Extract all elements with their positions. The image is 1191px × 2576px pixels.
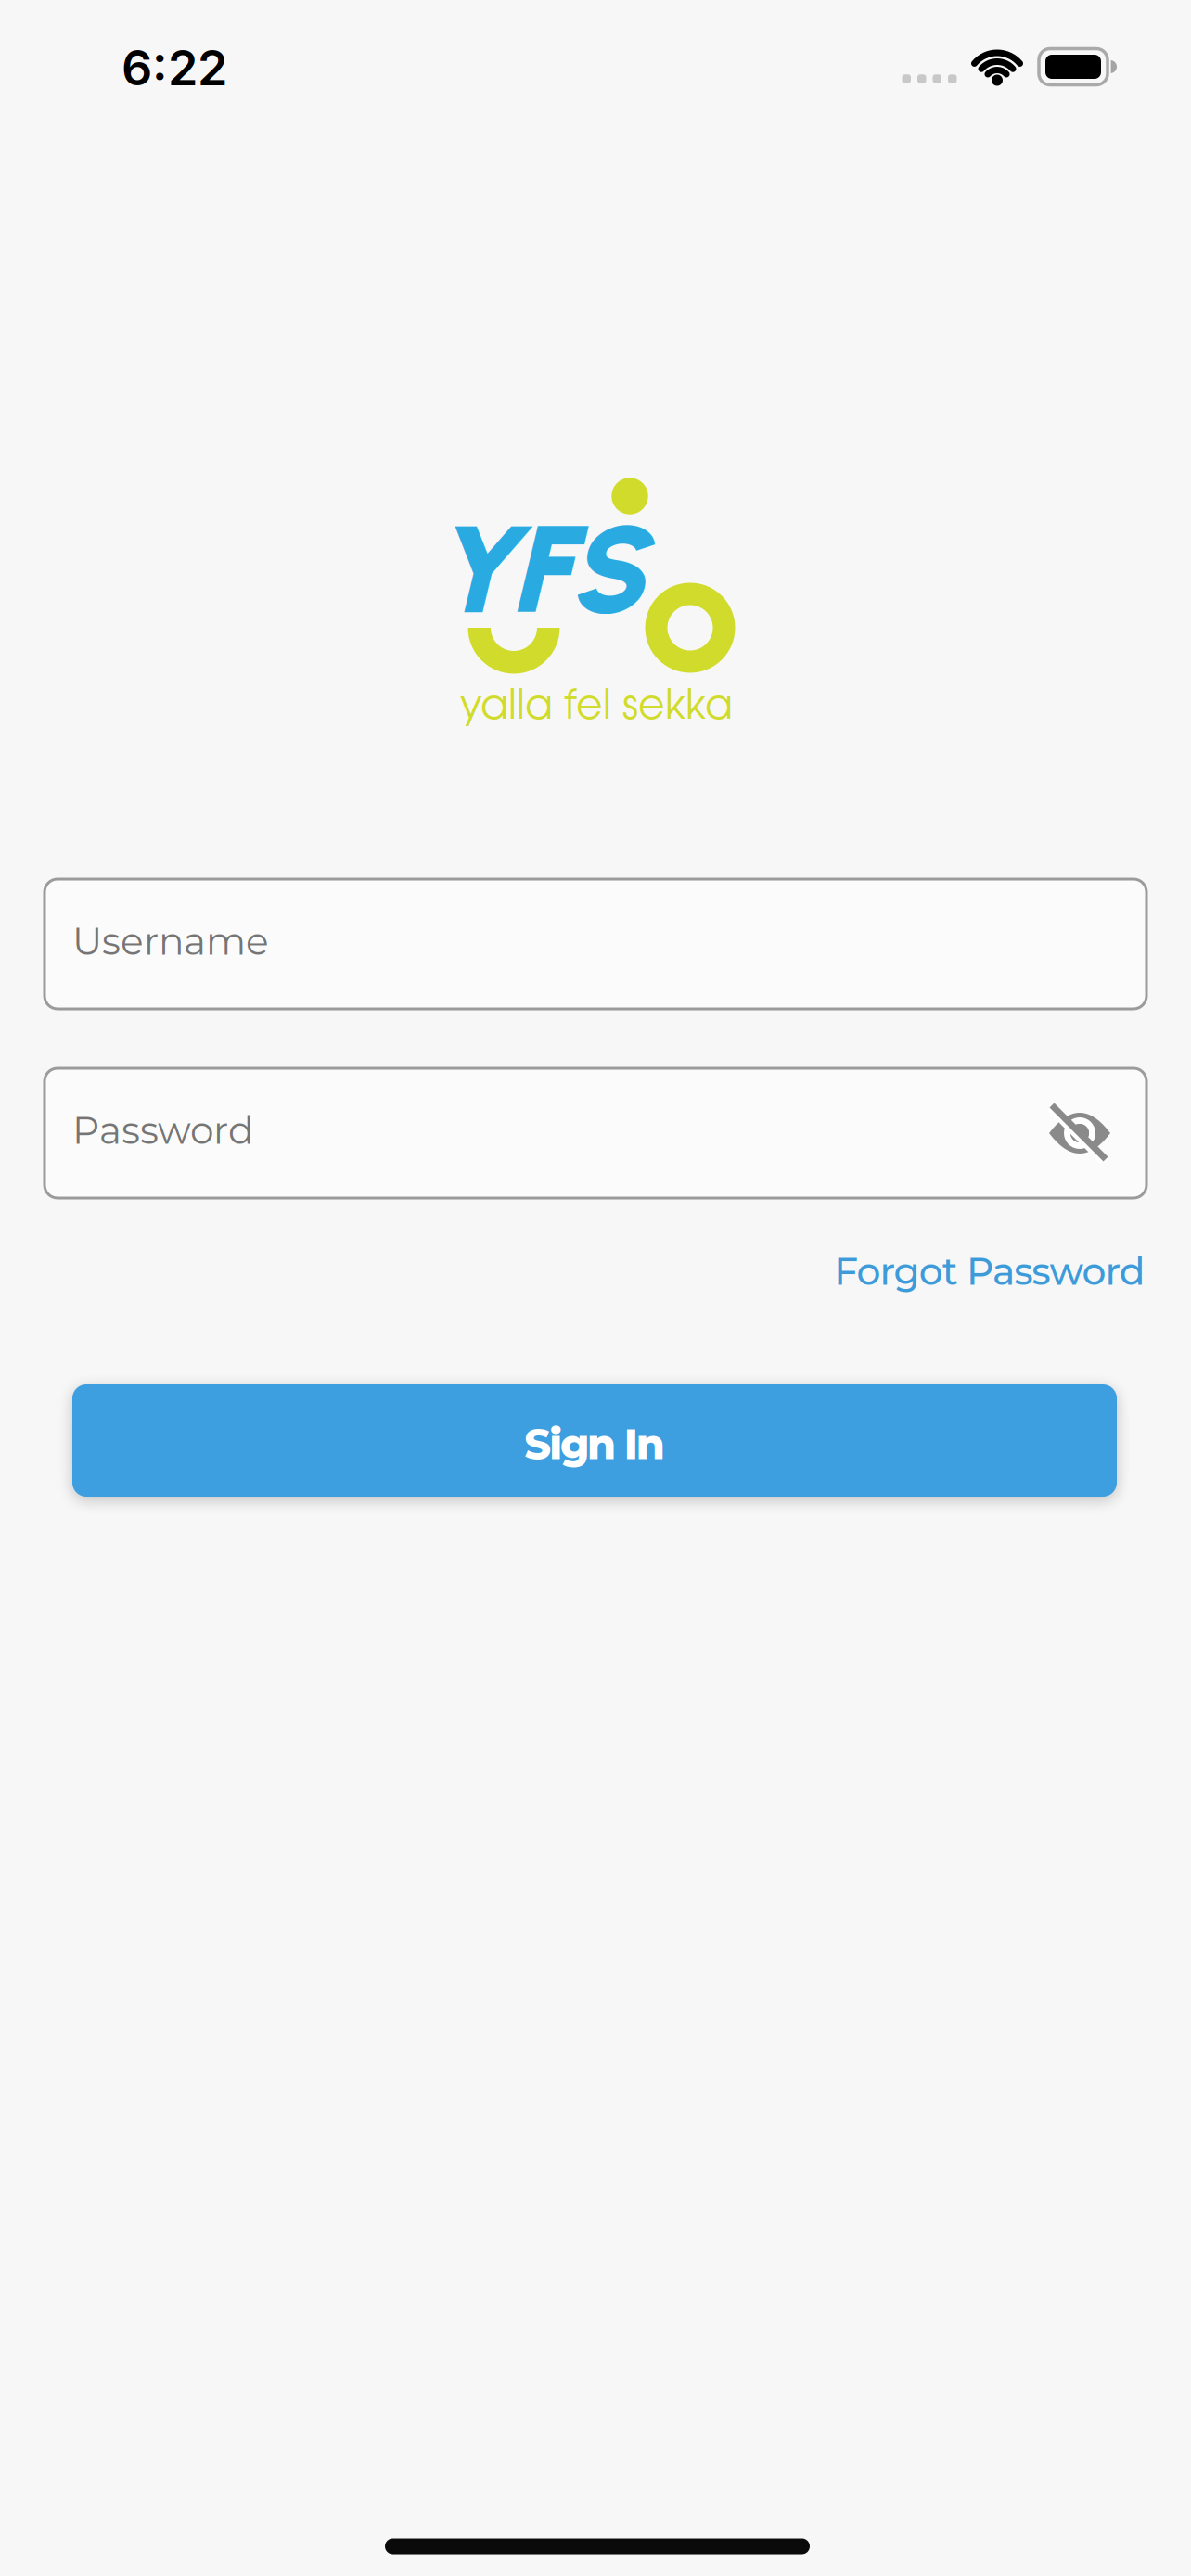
button[interactable]: Show password — [1038, 1091, 1121, 1175]
staticText: Password — [72, 1107, 254, 1153]
staticText: 6:22 — [122, 38, 227, 97]
button[interactable]: Forgot Password — [834, 1248, 1145, 1294]
staticText: yalla fel sekka — [460, 689, 733, 727]
staticText: Forgot Password — [834, 1248, 1145, 1294]
button[interactable]: Sign In — [72, 1384, 1117, 1497]
staticText: Sign In — [524, 1419, 665, 1469]
staticText: YFS — [448, 496, 662, 643]
staticText: Username — [72, 918, 269, 964]
